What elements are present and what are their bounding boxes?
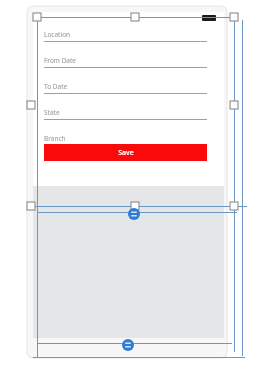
button[interactable]: Branch [44, 134, 207, 156]
staticText: To Date [44, 82, 68, 91]
button[interactable]: From Date [44, 56, 207, 78]
staticText: State [44, 108, 60, 117]
button[interactable]: Resize handle [33, 13, 41, 21]
button[interactable]: Resize handle [27, 101, 35, 109]
other: Battery [202, 15, 216, 21]
staticText: From Date [44, 56, 77, 65]
button[interactable]: Chain mode toggle [128, 208, 140, 220]
button[interactable]: Resize handle [230, 202, 238, 210]
staticText: Branch [44, 134, 66, 143]
button[interactable]: Location [44, 30, 207, 52]
button[interactable]: Resize handle [27, 202, 35, 210]
button[interactable]: Chain mode toggle [122, 339, 134, 351]
staticText: Location [44, 30, 71, 39]
button[interactable]: State [44, 108, 207, 130]
button[interactable]: Save [44, 144, 207, 161]
button[interactable]: Resize handle [230, 13, 238, 21]
button[interactable]: To Date [44, 82, 207, 104]
staticText: Save [118, 148, 134, 158]
button[interactable]: Resize handle [131, 13, 139, 21]
button[interactable]: Resize handle [230, 101, 238, 109]
button[interactable]: Resize handle [131, 202, 139, 210]
